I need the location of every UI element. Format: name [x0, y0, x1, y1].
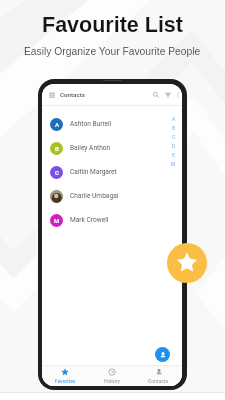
staticText: Contacts	[60, 91, 85, 98]
button[interactable]: Favourite	[167, 243, 207, 283]
button[interactable]: A	[42, 112, 182, 136]
staticText: Mark Crowell	[70, 216, 109, 224]
staticText: Easily Organize Your Favourite People	[24, 46, 201, 58]
staticText: Charlie Umbagai	[70, 192, 119, 200]
staticText: A	[55, 121, 59, 128]
staticText: A	[172, 116, 176, 122]
button[interactable]: Search	[151, 90, 161, 100]
button[interactable]: Add contact	[155, 347, 170, 362]
staticText: Ashton Burrell	[70, 120, 112, 128]
button[interactable]: B	[42, 136, 182, 160]
staticText: D	[172, 143, 176, 149]
staticText: C	[172, 134, 176, 140]
staticText: Bailey Anthon	[70, 144, 111, 152]
button[interactable]: History	[88, 366, 135, 386]
staticText: Caitlin Margaret	[70, 168, 117, 176]
button[interactable]: Menu	[47, 90, 57, 100]
staticText: E	[172, 152, 175, 158]
staticText: Favorites	[55, 378, 76, 384]
button[interactable]: Contacts	[135, 366, 182, 386]
staticText: Favourite List	[42, 13, 183, 37]
button[interactable]: M	[42, 208, 182, 232]
staticText: M	[54, 217, 60, 224]
button[interactable]: Favorites	[42, 366, 88, 386]
staticText: B	[172, 125, 176, 131]
staticText: C	[55, 169, 59, 176]
button[interactable]: More options	[173, 90, 182, 99]
staticText: History	[104, 378, 120, 384]
staticText: M	[171, 161, 176, 167]
button[interactable]: C	[42, 160, 182, 184]
button[interactable]: Filter	[163, 90, 173, 100]
button[interactable]: Charlie Umbagai	[42, 184, 182, 208]
staticText: B	[55, 145, 59, 152]
staticText: Contacts	[148, 378, 169, 384]
